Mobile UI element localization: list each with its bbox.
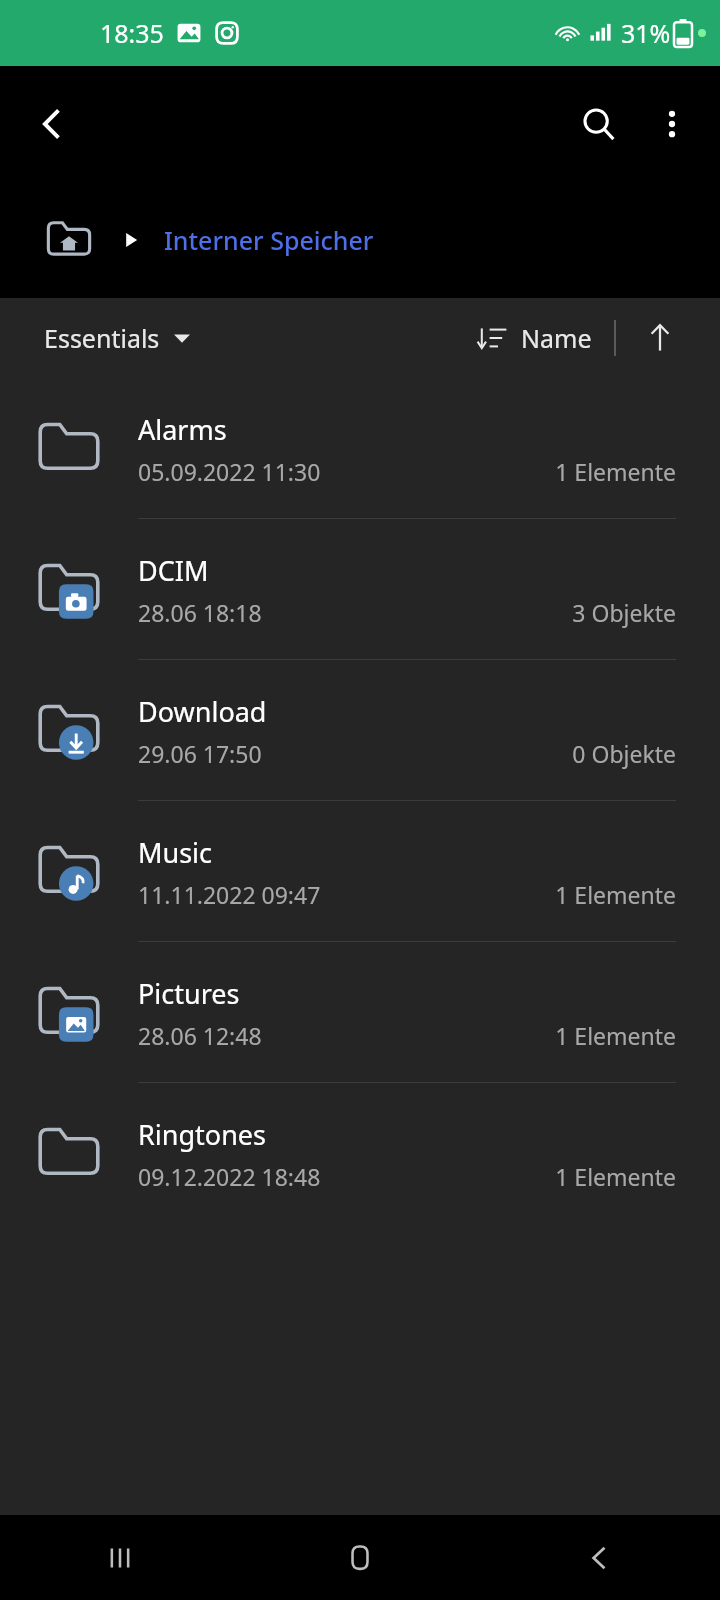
button[interactable]: Alarms <box>0 378 720 519</box>
button[interactable]: Pictures <box>0 942 720 1083</box>
staticText: 28.06 18:18 <box>138 597 262 628</box>
staticText: 18:35 <box>100 16 164 50</box>
button[interactable]: Interner Speicher <box>164 223 374 257</box>
staticText: 28.06 12:48 <box>138 1020 262 1051</box>
staticText: 0 Objekte <box>572 738 676 769</box>
staticText: 1 Elemente <box>555 879 676 910</box>
staticText: Music <box>138 834 213 871</box>
button[interactable]: DCIM <box>0 519 720 660</box>
staticText: Ringtones <box>138 1116 266 1153</box>
button[interactable]: Back <box>14 85 92 163</box>
staticText: 1 Elemente <box>555 456 676 487</box>
staticText: Pictures <box>138 975 240 1012</box>
button[interactable]: Back <box>480 1515 720 1600</box>
staticText: 3 Objekte <box>572 597 676 628</box>
button[interactable]: Essentials <box>44 321 192 355</box>
button[interactable]: Download <box>0 660 720 801</box>
staticText: Name <box>521 321 592 355</box>
staticText: Interner Speicher <box>164 223 374 257</box>
staticText: 1 Elemente <box>555 1020 676 1051</box>
staticText: DCIM <box>138 552 209 589</box>
staticText: Alarms <box>138 411 227 448</box>
button[interactable]: Home <box>240 1515 480 1600</box>
staticText: 29.06 17:50 <box>138 738 262 769</box>
button[interactable]: Recents <box>0 1515 240 1600</box>
button[interactable]: Sort ascending <box>634 312 686 364</box>
button[interactable]: Music <box>0 801 720 942</box>
staticText: 1 Elemente <box>555 1161 676 1192</box>
staticText: 09.12.2022 18:48 <box>138 1161 321 1192</box>
staticText: 05.09.2022 11:30 <box>138 456 321 487</box>
staticText: 11.11.2022 09:47 <box>138 879 321 910</box>
button[interactable]: Name <box>477 321 592 355</box>
staticText: 31% <box>621 16 671 50</box>
button[interactable]: More options <box>638 90 706 158</box>
button[interactable]: Ringtones <box>0 1083 720 1224</box>
staticText: Download <box>138 693 267 730</box>
button[interactable]: Search <box>560 85 638 163</box>
button[interactable]: Home folder <box>42 213 96 267</box>
staticText: Essentials <box>44 321 160 355</box>
